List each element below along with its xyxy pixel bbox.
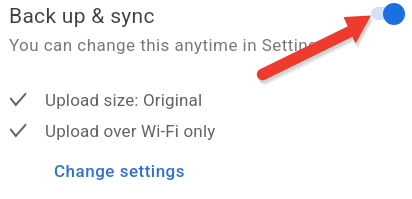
- staticText: Upload over Wi-Fi only: [45, 121, 216, 141]
- button[interactable]: Change settings: [54, 161, 185, 181]
- staticText: Upload size: Original: [45, 90, 203, 110]
- staticText: Back up & sync: [9, 4, 155, 29]
- staticText: You can change this anytime in Settings: [9, 35, 328, 55]
- button[interactable]: Back up and sync toggle, on: [368, 0, 410, 28]
- button[interactable]: Upload over Wi-Fi only: [10, 121, 197, 141]
- staticText: Change settings: [54, 161, 185, 181]
- button[interactable]: Upload size: Original: [10, 90, 184, 110]
